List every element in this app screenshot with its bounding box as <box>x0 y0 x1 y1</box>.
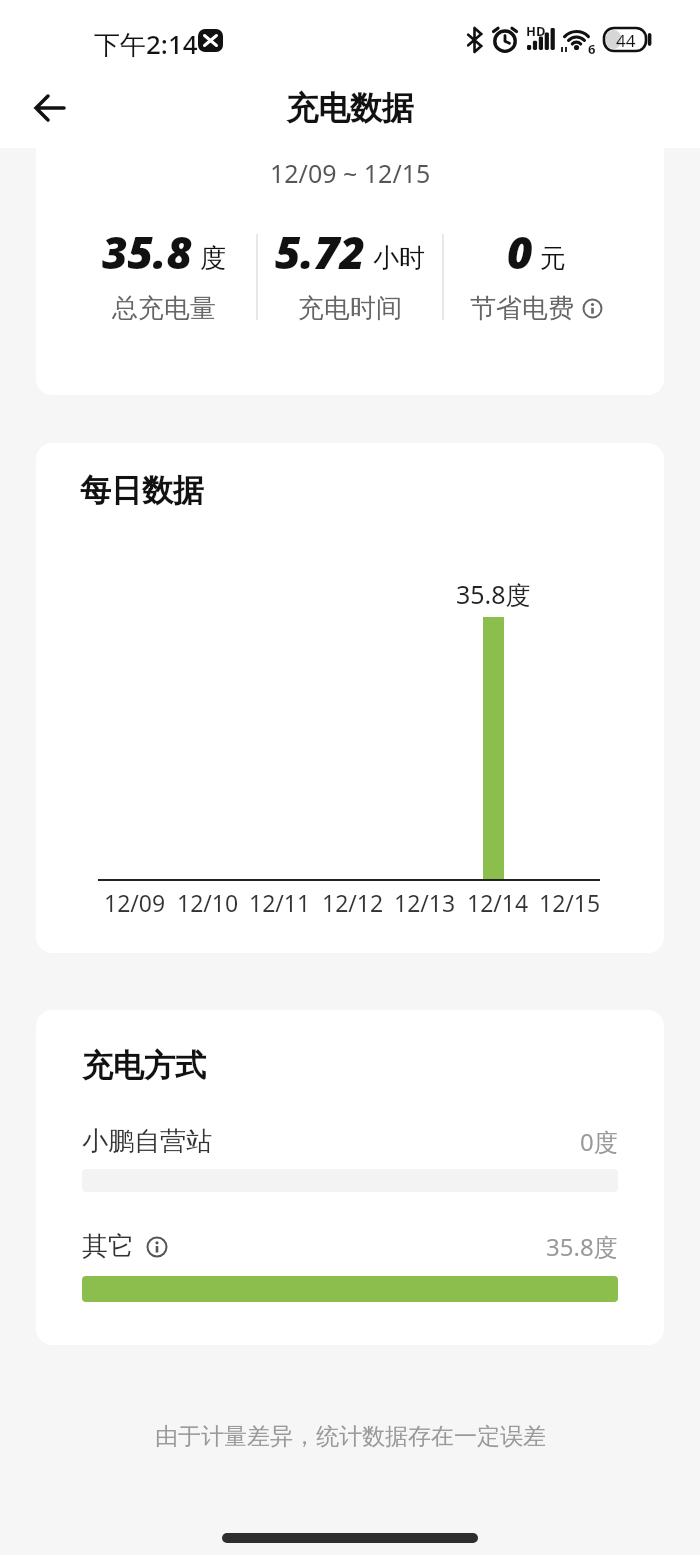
staticText: 节省电费 <box>470 292 574 325</box>
staticText: 度 <box>200 242 226 275</box>
staticText: HD <box>526 22 546 40</box>
staticText: 由于计量差异，统计数据存在一定误差 <box>155 1422 546 1451</box>
staticText: 每日数据 <box>80 471 204 510</box>
staticText: 12/15 <box>539 887 601 918</box>
staticText: 35.8 <box>102 222 193 282</box>
staticText: 5.72 <box>275 222 366 282</box>
staticText: 小时 <box>373 242 425 275</box>
staticText: 12/11 <box>249 887 311 918</box>
staticText: 12/14 <box>467 887 529 918</box>
staticText: 下午2:14 <box>94 26 198 62</box>
staticText: 0度 <box>580 1125 618 1158</box>
staticText: 其它 <box>82 1230 134 1263</box>
staticText: 元 <box>540 242 566 275</box>
staticText: 44 <box>616 29 636 52</box>
staticText: 充电方式 <box>82 1046 206 1085</box>
staticText: 12/10 <box>177 887 239 918</box>
staticText: 12/12 <box>322 887 384 918</box>
staticText: 小鹏自营站 <box>82 1125 212 1158</box>
staticText: 35.8度 <box>546 1230 618 1263</box>
staticText: 12/13 <box>394 887 456 918</box>
staticText: 0 <box>507 222 533 282</box>
staticText: 充电时间 <box>298 292 402 325</box>
staticText: 35.8度 <box>456 577 531 611</box>
button[interactable] <box>22 86 76 130</box>
staticText: 充电数据 <box>286 88 414 128</box>
staticText: 6 <box>588 40 596 58</box>
staticText: 总充电量 <box>112 292 216 325</box>
staticText: 12/09 <box>104 887 166 918</box>
staticText: 12/09 ~ 12/15 <box>270 156 431 190</box>
